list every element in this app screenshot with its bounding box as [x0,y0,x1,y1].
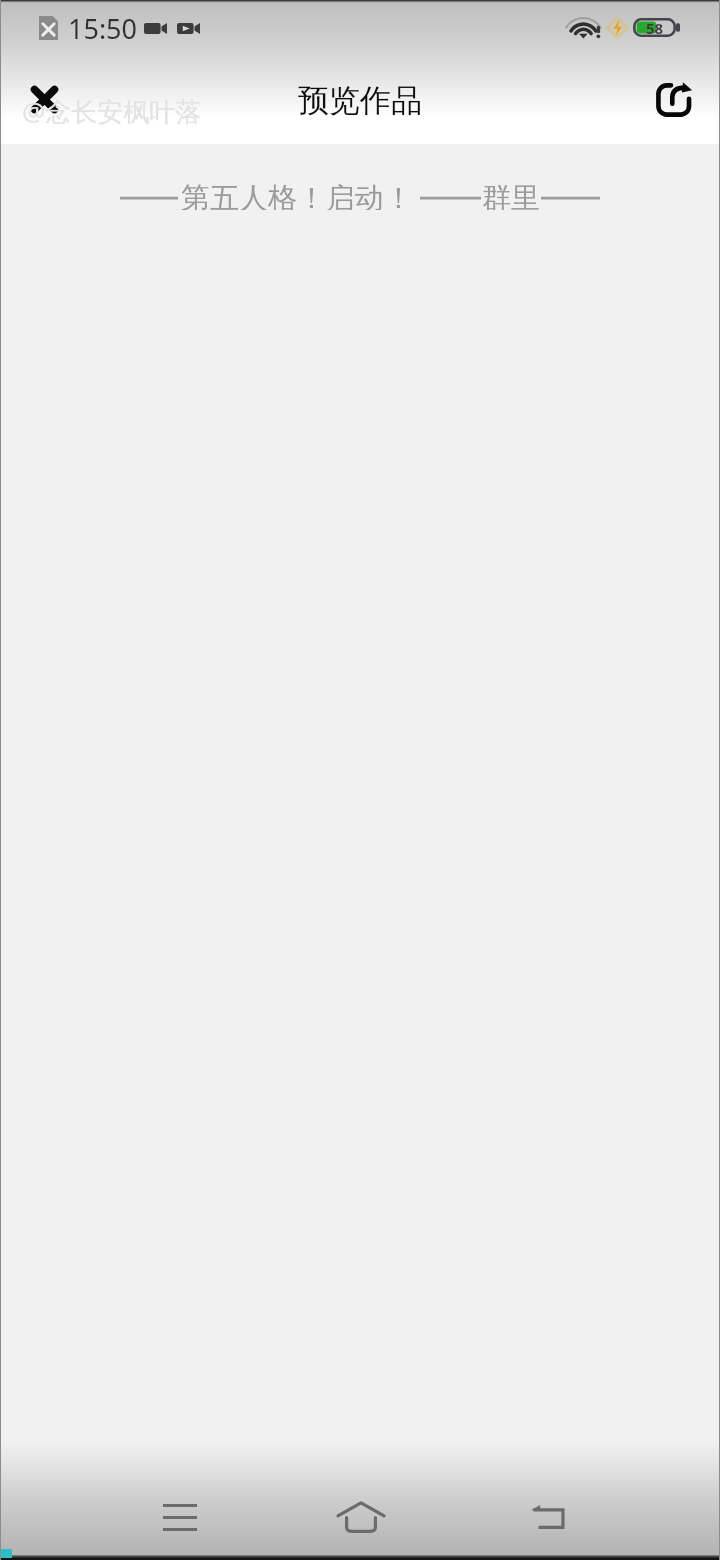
staticText: 第五人格！启动！ [181,180,413,210]
button[interactable]: Close [14,69,74,129]
staticText: @念长安枫叶落 [22,93,202,129]
staticText: 58 [646,18,664,38]
button[interactable]: Recents [140,1477,220,1557]
staticText: 预览作品 [298,81,422,120]
button[interactable]: Home [321,1477,401,1557]
button[interactable]: Share [644,70,704,130]
staticText: 群里 [482,180,540,210]
button[interactable]: Back [508,1477,588,1557]
staticText: 15:50 [68,10,138,47]
